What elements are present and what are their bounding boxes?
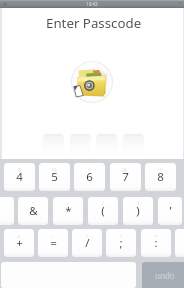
staticText: $ (18, 166, 22, 174)
button[interactable]: [ (88, 197, 118, 225)
staticText: \ (86, 232, 89, 240)
staticText: % (52, 166, 57, 174)
button[interactable]: " (158, 197, 182, 225)
staticText: : (154, 235, 158, 251)
button[interactable]: > (141, 229, 171, 257)
staticText: 6 (86, 169, 93, 185)
button[interactable]: \ (72, 229, 102, 257)
button[interactable]: ~ (38, 229, 68, 257)
button[interactable] (0, 197, 14, 225)
staticText: * (159, 166, 163, 174)
button[interactable]: $ (4, 163, 35, 191)
staticText: ( (101, 203, 105, 219)
staticText: 7 (122, 169, 129, 185)
staticText: + (16, 235, 23, 251)
button[interactable]: ] (123, 197, 153, 225)
staticText: • (67, 200, 70, 208)
staticText: 5 (51, 169, 58, 185)
button[interactable]: < (106, 229, 136, 257)
staticText: ; (119, 235, 123, 251)
staticText: ± (17, 232, 21, 240)
staticText: * (65, 203, 72, 219)
staticText: undo (155, 270, 175, 281)
staticText: & (29, 203, 38, 219)
button[interactable]: Passcode digit 3 (96, 134, 117, 154)
staticText: > (154, 232, 158, 240)
button[interactable]: & (110, 163, 141, 191)
staticText: Enter Passcode (46, 14, 142, 32)
button[interactable]: Passcode digit 2 (70, 134, 91, 154)
button[interactable] (175, 229, 184, 257)
button[interactable]: Passcode digit 4 (123, 134, 144, 154)
staticText: < (119, 232, 123, 240)
staticText: = (50, 235, 57, 251)
staticText: & (123, 166, 128, 174)
staticText: 4 (16, 169, 23, 185)
staticText: / (85, 235, 90, 251)
button[interactable]: * (145, 163, 176, 191)
staticText: ] (137, 200, 139, 208)
staticText: ’ (169, 203, 172, 219)
staticText: ° (32, 200, 35, 208)
button[interactable]: • (53, 197, 83, 225)
staticText: ^ (88, 166, 92, 174)
button[interactable]: ° (18, 197, 48, 225)
staticText: 19:42 (86, 1, 98, 7)
button[interactable]: % (39, 163, 70, 191)
button[interactable]: Passcode digit 1 (43, 134, 64, 154)
staticText: 8 (157, 169, 164, 185)
button[interactable]: ^ (74, 163, 105, 191)
staticText: [ (102, 200, 104, 208)
button[interactable]: undo (142, 262, 184, 288)
staticText: ) (136, 203, 140, 219)
staticText: ~ (51, 232, 55, 240)
staticText: " (169, 200, 172, 208)
button[interactable]: ± (4, 229, 34, 257)
